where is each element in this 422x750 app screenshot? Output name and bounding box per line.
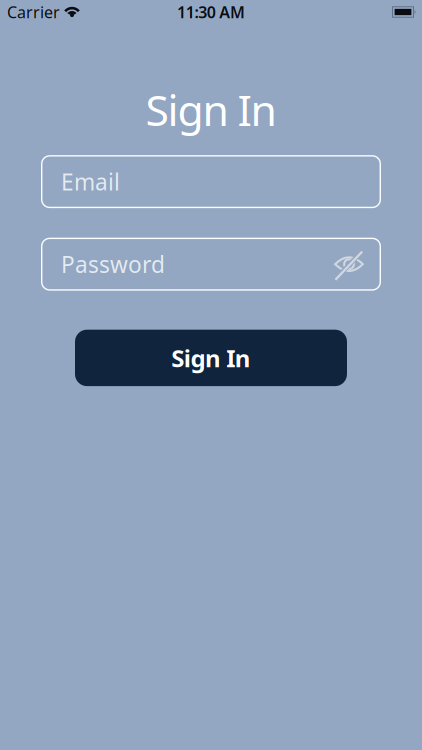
- button[interactable]: Sign In: [75, 330, 347, 386]
- staticText: Sign In: [171, 342, 251, 374]
- staticText: 11:30 AM: [177, 1, 245, 23]
- staticText: Carrier: [7, 1, 60, 23]
- staticText: Password: [61, 249, 165, 279]
- button[interactable]: Show password: [334, 255, 364, 273]
- staticText: Email: [61, 167, 120, 197]
- staticText: Sign In: [145, 81, 276, 138]
